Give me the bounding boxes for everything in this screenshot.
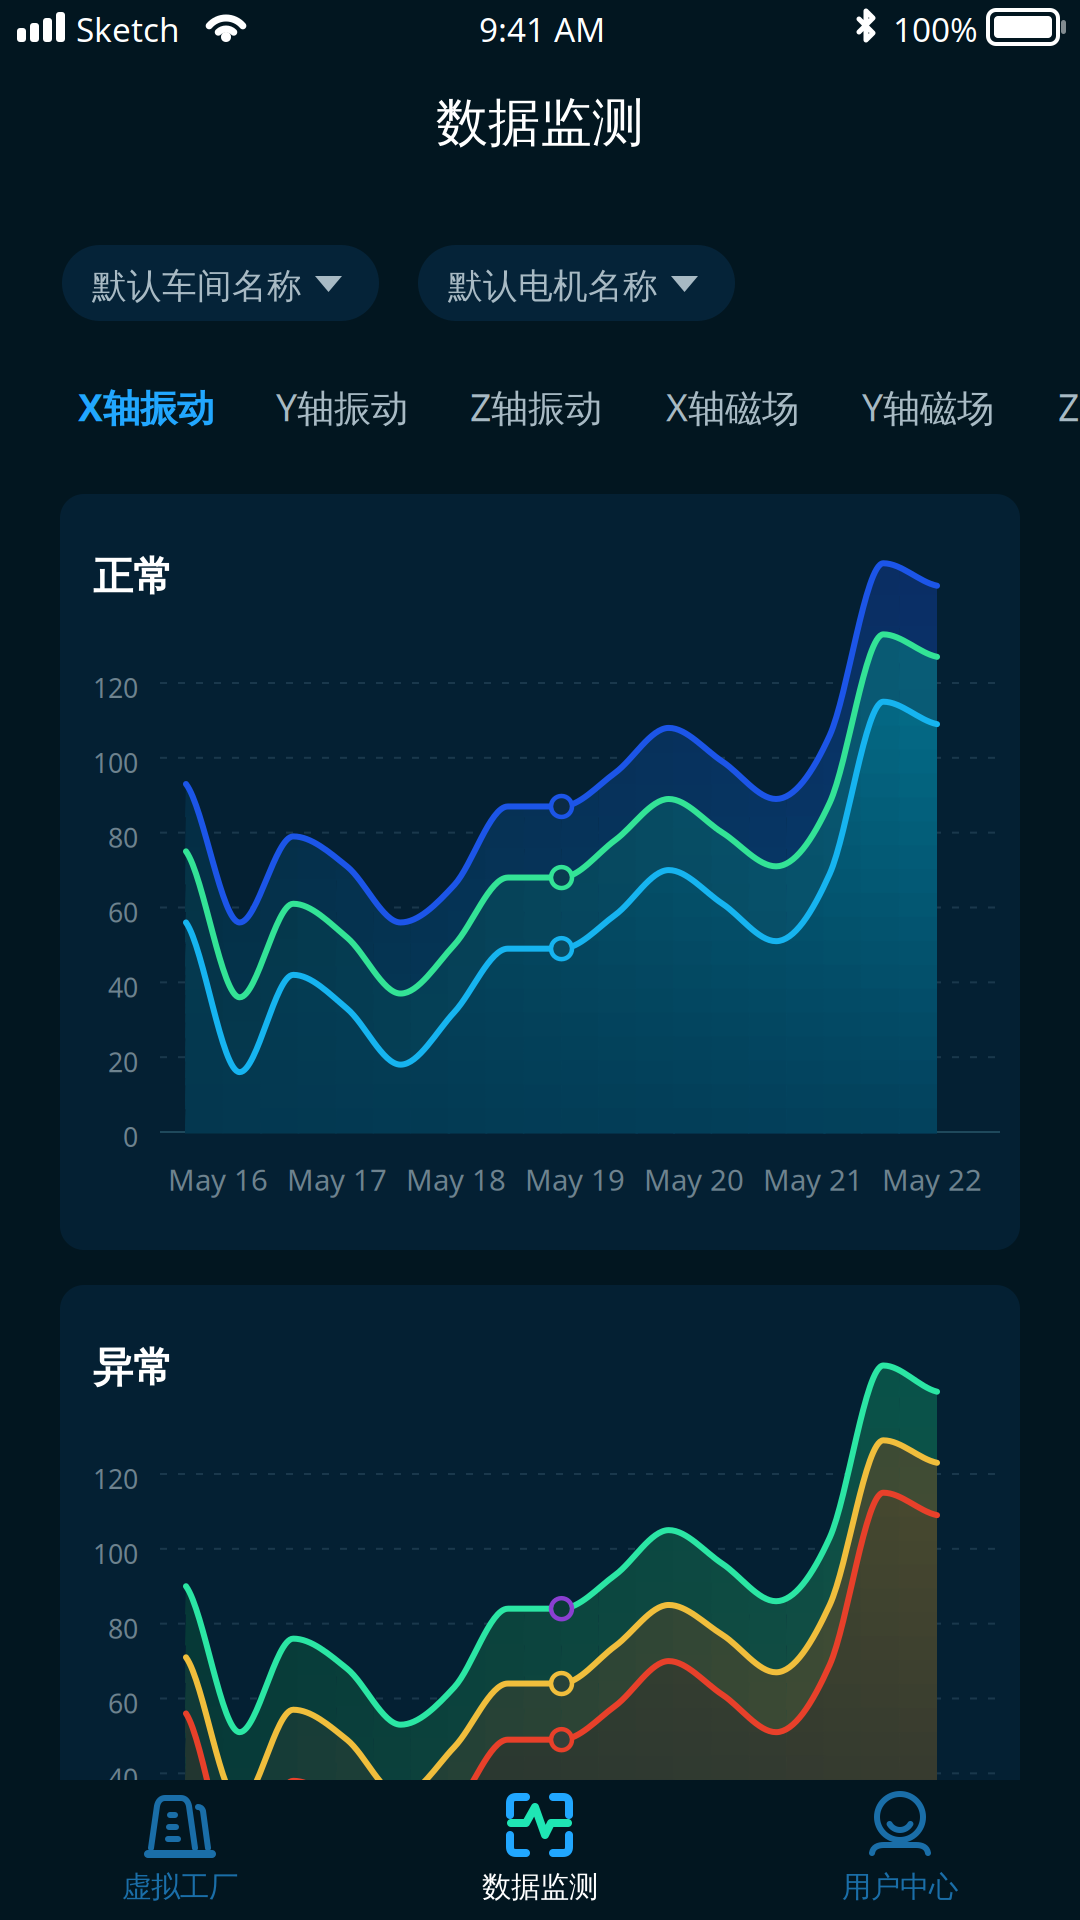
button[interactable]: 虚拟工厂 xyxy=(0,1780,360,1920)
staticText: 100% xyxy=(893,7,978,51)
staticText: May 21 xyxy=(763,1160,863,1199)
staticText: May 19 xyxy=(525,1160,625,1199)
staticText: 0 xyxy=(123,1119,138,1154)
staticText: X轴磁场 xyxy=(666,382,799,432)
staticText: May 16 xyxy=(168,1160,268,1199)
staticText: 60 xyxy=(108,894,138,930)
staticText: 40 xyxy=(108,1760,138,1796)
button[interactable]: Y轴振动 xyxy=(276,382,408,432)
button[interactable]: X轴磁场 xyxy=(666,382,799,432)
button[interactable]: Y轴磁场 xyxy=(862,382,994,432)
button[interactable]: 默认车间名称 xyxy=(62,245,379,321)
staticText: May 17 xyxy=(287,1160,387,1199)
staticText: 100 xyxy=(93,1536,138,1571)
staticText: 80 xyxy=(108,820,138,855)
staticText: Y轴磁场 xyxy=(862,382,994,432)
button[interactable]: Z轴振动 xyxy=(470,382,602,432)
staticText: 100 xyxy=(93,745,138,780)
staticText: May 20 xyxy=(644,1160,744,1199)
staticText: 9:41 AM xyxy=(479,7,605,51)
staticText: 虚拟工厂 xyxy=(122,1869,238,1905)
button[interactable]: Z xyxy=(1058,382,1079,432)
staticText: 80 xyxy=(108,1611,138,1646)
staticText: 默认电机名称 xyxy=(448,265,658,308)
staticText: May 18 xyxy=(406,1160,506,1199)
staticText: 默认车间名称 xyxy=(92,265,302,308)
staticText: 用户中心 xyxy=(842,1869,958,1905)
staticText: Z轴振动 xyxy=(470,382,602,432)
staticText: 数据监测 xyxy=(482,1869,598,1905)
staticText: X轴振动 xyxy=(78,382,214,432)
staticText: Z xyxy=(1058,382,1079,432)
staticText: May 22 xyxy=(882,1160,982,1199)
button[interactable]: X轴振动 xyxy=(78,382,214,432)
staticText: 40 xyxy=(108,969,138,1005)
button[interactable]: 用户中心 xyxy=(0,1780,1080,1920)
button[interactable]: 数据监测 xyxy=(0,1780,1080,1920)
staticText: 数据监测 xyxy=(436,91,644,155)
staticText: 120 xyxy=(93,670,138,705)
staticText: 正常 xyxy=(93,552,173,601)
staticText: Sketch xyxy=(76,7,180,51)
staticText: 20 xyxy=(108,1044,138,1080)
staticText: Y轴振动 xyxy=(276,382,408,432)
button[interactable]: 默认电机名称 xyxy=(418,245,735,321)
staticText: 异常 xyxy=(93,1343,173,1392)
staticText: 60 xyxy=(108,1685,138,1721)
staticText: 120 xyxy=(93,1461,138,1496)
